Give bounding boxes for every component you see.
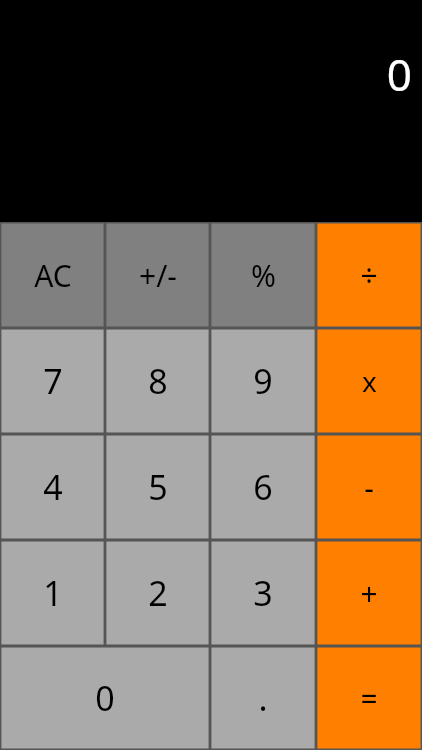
staticText: 2 [148, 570, 168, 616]
staticText: . [258, 675, 268, 721]
button[interactable]: 0 [0, 646, 210, 750]
button[interactable]: 4 [0, 434, 105, 540]
button[interactable]: 5 [105, 434, 210, 540]
button[interactable]: 8 [105, 328, 210, 434]
button[interactable]: +/- [105, 222, 210, 328]
staticText: x [362, 362, 377, 400]
staticText: 0 [95, 675, 115, 721]
staticText: ÷ [360, 255, 378, 296]
staticText: 9 [253, 358, 273, 404]
staticText: +/- [139, 255, 177, 296]
staticText: = [360, 678, 378, 719]
staticText: 6 [253, 464, 273, 510]
button[interactable]: % [210, 222, 316, 328]
button[interactable]: . [210, 646, 316, 750]
staticText: AC [34, 255, 72, 296]
staticText: 0 [386, 44, 412, 104]
staticText: 8 [148, 358, 168, 404]
button[interactable]: 7 [0, 328, 105, 434]
button[interactable]: 9 [210, 328, 316, 434]
button[interactable]: 6 [210, 434, 316, 540]
button[interactable]: AC [0, 222, 105, 328]
staticText: 3 [253, 570, 273, 616]
staticText: - [364, 467, 374, 508]
staticText: 5 [148, 464, 168, 510]
button[interactable]: 1 [0, 540, 105, 646]
button[interactable]: = [316, 646, 422, 750]
staticText: 4 [43, 464, 63, 510]
staticText: 1 [43, 570, 63, 616]
staticText: + [360, 573, 378, 614]
staticText: % [251, 255, 276, 296]
button[interactable]: x [316, 328, 422, 434]
button[interactable]: 2 [105, 540, 210, 646]
button[interactable]: + [316, 540, 422, 646]
button[interactable]: 3 [210, 540, 316, 646]
button[interactable]: ÷ [316, 222, 422, 328]
staticText: 7 [43, 358, 63, 404]
button[interactable]: - [316, 434, 422, 540]
